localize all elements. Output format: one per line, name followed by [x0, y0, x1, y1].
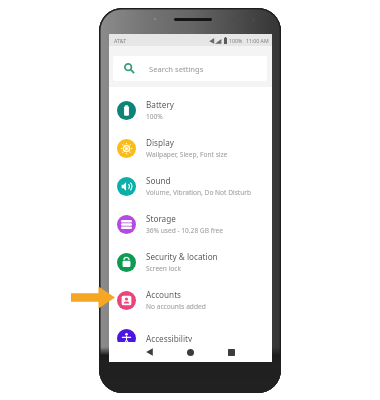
- staticText: 100%: [146, 112, 163, 121]
- button[interactable]: Battery: [109, 91, 272, 129]
- staticText: Screen lock: [146, 264, 181, 273]
- staticText: Security & location: [146, 251, 218, 262]
- button[interactable]: Home: [182, 344, 198, 360]
- staticText: Storage: [146, 213, 176, 224]
- staticText: Display: [146, 137, 174, 148]
- button[interactable]: Accessibility: [109, 319, 272, 357]
- staticText: Accounts: [146, 289, 182, 300]
- staticText: 36% used - 10.28 GB free: [146, 226, 223, 235]
- staticText: Battery: [146, 99, 175, 110]
- staticText: Search settings: [149, 64, 204, 74]
- button[interactable]: Security & location: [109, 243, 272, 281]
- button[interactable]: Back: [141, 344, 157, 360]
- staticText: Volume, Vibration, Do Not Disturb: [146, 188, 252, 197]
- button[interactable]: Recent apps: [223, 344, 239, 360]
- button[interactable]: Storage: [109, 205, 272, 243]
- button[interactable]: Search settings: [113, 56, 267, 81]
- staticText: Sound: [146, 175, 171, 186]
- button[interactable]: Display: [109, 129, 272, 167]
- staticText: Wallpaper, Sleep, Font size: [146, 150, 228, 159]
- staticText: AT&T: [114, 37, 127, 44]
- staticText: 11:00 AM: [246, 37, 269, 44]
- staticText: No accounts added: [146, 302, 206, 311]
- staticText: 100%: [229, 37, 243, 44]
- staticText: Accessibility: [146, 333, 193, 344]
- button[interactable]: Sound: [109, 167, 272, 205]
- button[interactable]: Accounts: [109, 281, 272, 319]
